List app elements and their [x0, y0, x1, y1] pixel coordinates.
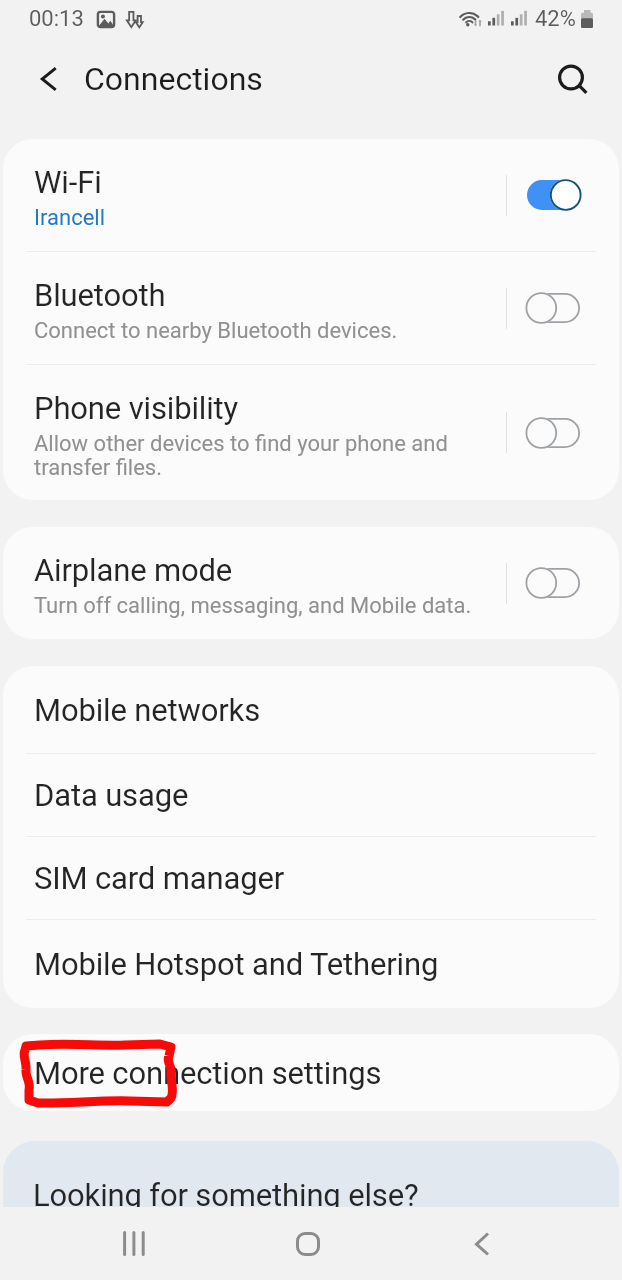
button[interactable]: Mobile networks — [3, 666, 619, 753]
button[interactable]: Airplane mode off — [507, 527, 619, 639]
button[interactable]: Phone visibility — [3, 365, 619, 500]
button[interactable]: Recent apps — [74, 1207, 194, 1280]
staticText: Phone visibility — [34, 390, 239, 426]
button[interactable]: Data usage — [3, 754, 619, 836]
staticText: More connection settings — [34, 1055, 382, 1091]
staticText: Allow other devices to find your phone a… — [34, 431, 448, 480]
button[interactable]: Wi-Fi on — [507, 139, 619, 251]
button[interactable]: SIM card manager — [3, 837, 619, 919]
button[interactable]: Bluetooth — [3, 252, 619, 364]
staticText: Airplane mode — [34, 552, 233, 588]
staticText: Irancell — [34, 205, 106, 231]
staticText: Connections — [84, 60, 263, 98]
button[interactable]: Looking for something else? — [3, 1141, 619, 1207]
staticText: SIM card manager — [34, 860, 285, 896]
button[interactable]: Back — [422, 1207, 542, 1280]
button[interactable]: Airplane mode — [3, 527, 619, 639]
button[interactable]: Search — [548, 55, 596, 103]
button[interactable]: Mobile Hotspot and Tethering — [3, 920, 619, 1008]
button[interactable]: Phone visibility off — [507, 365, 619, 500]
staticText: Looking for something else? — [33, 1177, 419, 1207]
button[interactable]: Back — [26, 55, 74, 103]
staticText: 00:13 — [29, 6, 84, 32]
staticText: Mobile Hotspot and Tethering — [34, 946, 439, 982]
staticText: 42% — [535, 6, 576, 32]
button[interactable]: More connection settings — [3, 1034, 619, 1111]
staticText: Bluetooth — [34, 277, 166, 313]
button[interactable]: Home — [248, 1207, 368, 1280]
staticText: Wi-Fi — [34, 164, 102, 200]
staticText: Data usage — [34, 777, 189, 813]
staticText: Mobile networks — [34, 692, 260, 728]
button[interactable]: Wi-Fi — [3, 139, 619, 251]
staticText: Connect to nearby Bluetooth devices. — [34, 318, 398, 344]
button[interactable]: Bluetooth off — [507, 252, 619, 364]
staticText: Turn off calling, messaging, and Mobile … — [34, 593, 472, 619]
